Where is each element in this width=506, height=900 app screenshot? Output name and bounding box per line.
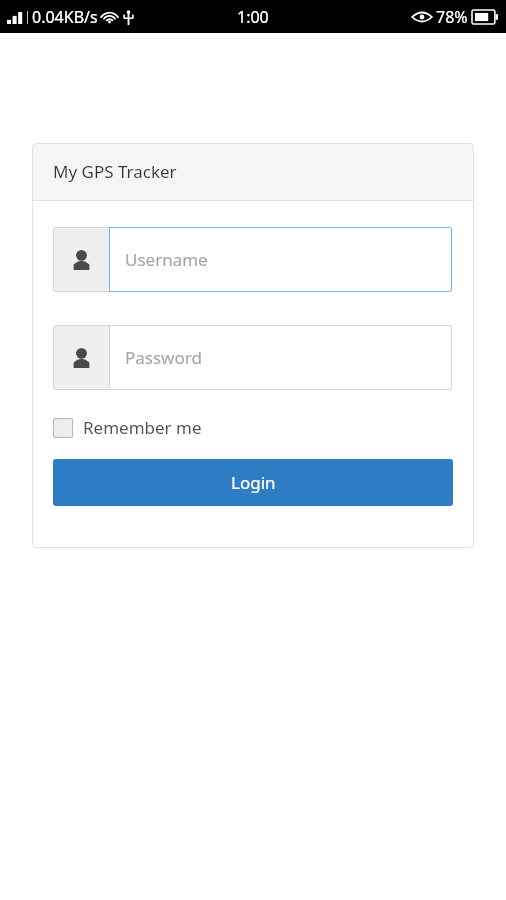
staticText: Password: [125, 346, 202, 369]
button[interactable]: Remember me: [53, 416, 202, 439]
button[interactable]: Username: [53, 227, 453, 292]
staticText: My GPS Tracker: [53, 160, 177, 183]
staticText: 78%: [436, 6, 468, 28]
button[interactable]: Password: [53, 325, 453, 390]
staticText: Username: [125, 248, 208, 271]
button[interactable]: Login: [53, 459, 453, 506]
staticText: 0.04KB/s: [32, 6, 98, 28]
staticText: Remember me: [83, 416, 202, 439]
staticText: Login: [231, 471, 276, 494]
staticText: 1:00: [237, 6, 269, 28]
